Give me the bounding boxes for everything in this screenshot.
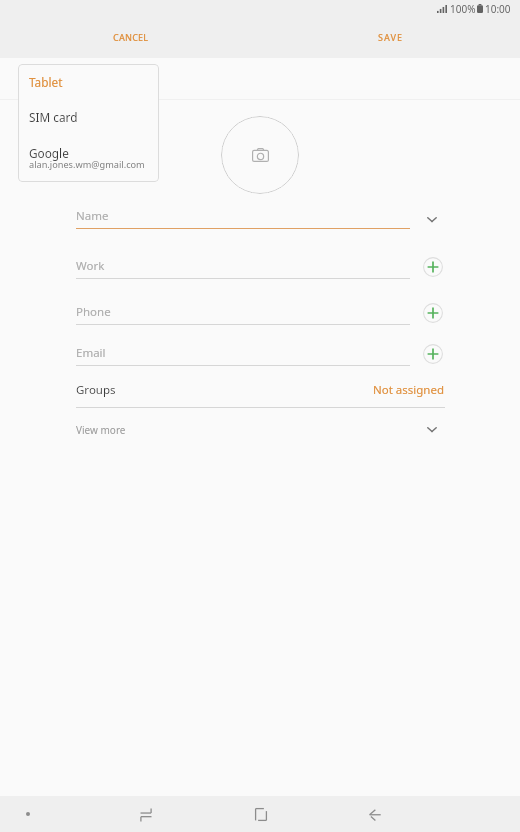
staticText: SAVE: [378, 31, 404, 43]
button[interactable]: Tablet: [18, 68, 159, 94]
staticText: Google: [29, 145, 69, 161]
staticText: Work: [76, 258, 105, 274]
button[interactable]: Add photo: [221, 116, 299, 194]
button[interactable]: Groups: [76, 376, 445, 404]
staticText: CANCEL: [113, 31, 149, 43]
staticText: Groups: [76, 382, 116, 398]
button[interactable]: SAVE: [366, 25, 416, 49]
button[interactable]: CANCEL: [101, 25, 161, 49]
staticText: alan.jones.wm@gmail.com: [29, 158, 145, 171]
button[interactable]: Back: [362, 801, 388, 827]
staticText: Phone: [76, 304, 111, 320]
staticText: SIM card: [29, 109, 78, 125]
staticText: 10:00: [485, 2, 511, 16]
button[interactable]: Phone: [76, 301, 410, 324]
staticText: View more: [76, 423, 126, 437]
button[interactable]: [0, 58, 520, 99]
button[interactable]: Add Phone: [422, 302, 444, 324]
staticText: Tablet: [29, 74, 63, 90]
button[interactable]: More options: [15, 801, 41, 827]
button[interactable]: Recent apps: [133, 802, 159, 828]
button[interactable]: Expand name fields: [416, 203, 448, 235]
button[interactable]: Add Email: [422, 343, 444, 365]
button[interactable]: SIM card: [18, 103, 159, 129]
button[interactable]: Add Work: [422, 256, 444, 278]
staticText: Name: [76, 208, 109, 224]
button[interactable]: Name: [76, 205, 410, 228]
staticText: 100%: [450, 2, 476, 16]
staticText: Not assigned: [373, 382, 445, 398]
button[interactable]: Email: [76, 342, 410, 365]
button[interactable]: View more: [76, 414, 445, 444]
button[interactable]: Work: [76, 255, 410, 278]
button[interactable]: Home: [248, 801, 274, 827]
staticText: Email: [76, 345, 106, 361]
button[interactable]: Google: [18, 139, 159, 171]
